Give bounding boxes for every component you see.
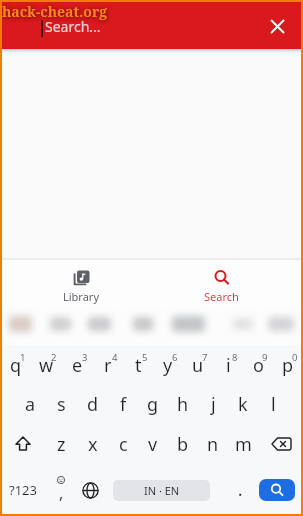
button[interactable]: o [243,345,273,385]
staticText: q [10,353,22,378]
staticText: x [88,432,98,457]
staticText: Search [204,289,239,304]
staticText: u [192,353,204,378]
button[interactable]: g [138,385,168,423]
staticText: 7 [202,351,208,364]
staticText: r [104,353,112,378]
staticText: k [238,392,248,417]
staticText: g [147,392,159,417]
staticText: 3 [82,351,88,364]
staticText: 5 [142,351,148,364]
staticText: f [120,392,127,417]
staticText: 9 [262,351,268,364]
button[interactable]: a [15,385,46,423]
staticText: 1 [20,351,26,364]
button[interactable] [78,478,102,502]
button[interactable]: n [198,423,228,465]
button[interactable] [259,479,295,501]
button[interactable]: p [273,345,303,385]
button[interactable]: b [168,423,198,465]
button[interactable]: . [228,475,252,505]
staticText: Search... [45,17,101,36]
staticText: z [57,432,66,457]
button[interactable]: x [77,423,108,465]
staticText: t [135,353,142,378]
button[interactable]: s [46,385,77,423]
staticText: j [211,392,216,417]
button[interactable] [263,12,291,40]
staticText: 8 [232,351,238,364]
button[interactable]: IN · EN [113,480,210,501]
button[interactable]: l [258,385,288,423]
button[interactable]: t [123,345,153,385]
button[interactable]: Search [151,260,292,307]
staticText: b [177,432,189,457]
staticText: o [253,353,264,378]
button[interactable]: y [153,345,183,385]
button[interactable]: Library [11,260,151,307]
staticText: , [59,482,64,504]
staticText: Library [63,289,100,304]
button[interactable]: c [108,423,138,465]
button[interactable]: u [183,345,213,385]
staticText: 4 [112,351,118,364]
staticText: d [87,392,99,417]
button[interactable]: f [108,385,138,423]
button[interactable]: z [46,423,77,465]
button[interactable]: e [62,345,93,385]
staticText: p [282,353,294,378]
button[interactable]: r [93,345,123,385]
button[interactable]: m [228,423,258,465]
button[interactable]: h [168,385,198,423]
staticText: IN · EN [144,483,180,498]
staticText: l [271,392,276,417]
staticText: v [148,432,158,457]
button[interactable] [258,423,303,465]
staticText: hack-cheat.org [2,2,108,21]
staticText: s [57,392,66,417]
staticText: m [235,432,252,457]
button[interactable]: , [48,475,74,505]
staticText: 6 [172,351,178,364]
button[interactable]: k [228,385,258,423]
staticText: a [25,392,36,417]
button[interactable]: v [138,423,168,465]
staticText: h [177,392,189,417]
staticText: 2 [51,351,57,364]
button[interactable]: i [213,345,243,385]
button[interactable]: w [31,345,62,385]
button[interactable] [0,423,46,465]
staticText: c [119,432,128,457]
staticText: ?123 [9,481,37,499]
staticText: 0 [292,351,298,364]
staticText: . [238,479,243,501]
staticText: w [39,353,54,378]
staticText: n [207,432,219,457]
button[interactable]: q [0,345,31,385]
button[interactable]: ?123 [4,475,42,505]
staticText: e [72,353,83,378]
staticText: y [163,353,173,378]
button[interactable]: j [198,385,228,423]
button[interactable]: d [77,385,108,423]
staticText: i [226,353,231,378]
